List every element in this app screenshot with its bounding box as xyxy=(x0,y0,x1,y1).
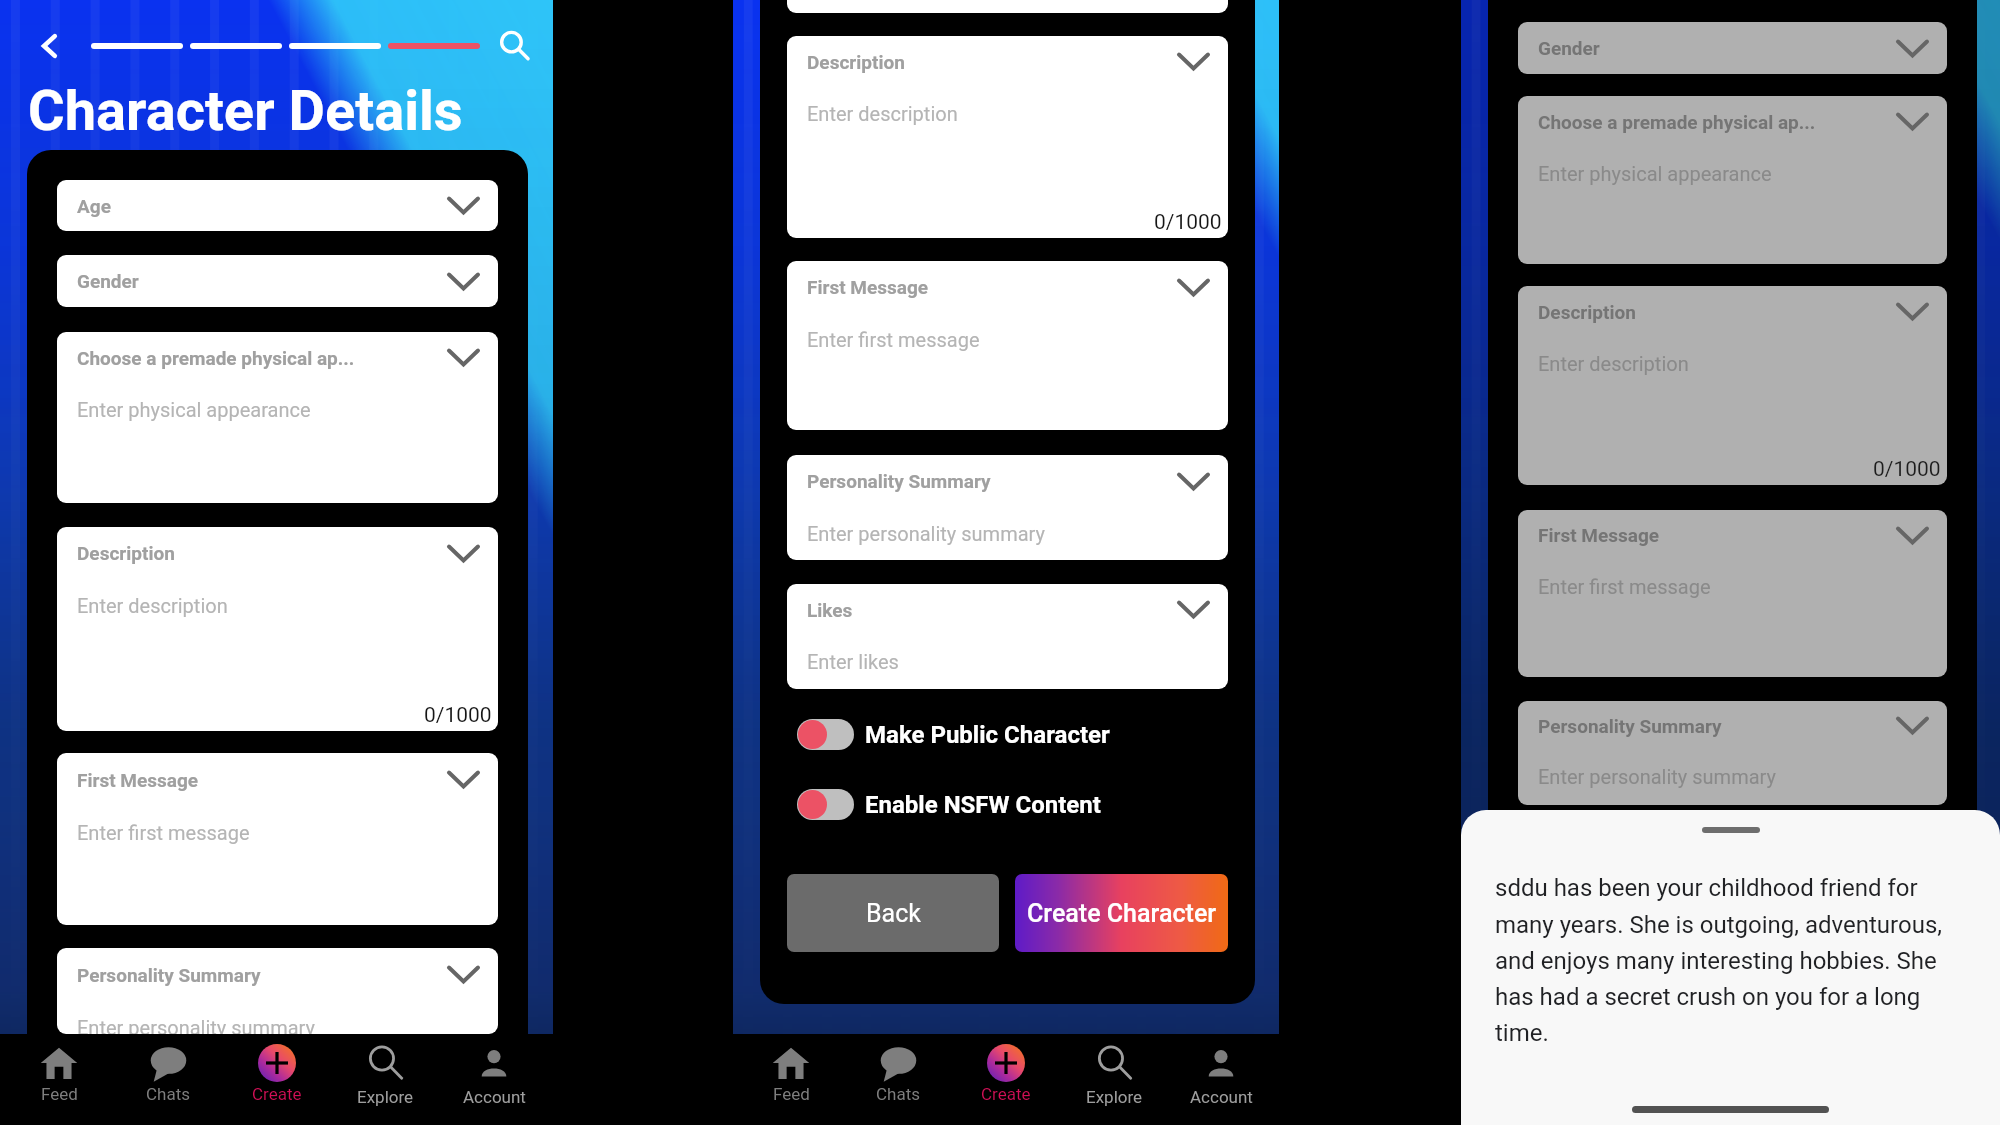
button[interactable]: Enter personality summary xyxy=(57,1001,498,1034)
button[interactable]: Enter description xyxy=(1518,337,1947,485)
staticText: Enter description xyxy=(807,102,958,125)
staticText: First Message xyxy=(807,276,1177,298)
staticText: Enter likes xyxy=(807,650,899,673)
button[interactable]: Enter first message xyxy=(57,806,498,925)
button[interactable]: Feed xyxy=(741,1034,841,1125)
staticText: 0/1000 xyxy=(424,703,492,728)
button[interactable]: Description xyxy=(787,36,1228,87)
staticText: Choose a premade physical ap... xyxy=(1538,111,1896,133)
button[interactable]: Create xyxy=(227,1034,327,1125)
button[interactable]: Back xyxy=(787,874,999,952)
button[interactable]: Choose a premade physical ap... xyxy=(1518,96,1947,147)
button[interactable]: Enter physical appearance xyxy=(1518,147,1947,264)
button[interactable]: Feed xyxy=(9,1034,109,1125)
button[interactable]: Account xyxy=(444,1034,544,1125)
staticText: Enter personality summary xyxy=(807,522,1045,545)
staticText: Character Details xyxy=(28,78,463,144)
button[interactable]: Create Character xyxy=(1015,874,1228,952)
staticText: Create Character xyxy=(1027,899,1217,928)
staticText: Account xyxy=(1190,1087,1253,1107)
staticText: Enter physical appearance xyxy=(77,398,311,421)
staticText: Create xyxy=(981,1084,1031,1104)
staticText: Feed xyxy=(773,1084,810,1104)
button[interactable]: Gender xyxy=(57,255,498,307)
button[interactable]: Enter likes xyxy=(787,635,1228,689)
staticText: Likes xyxy=(807,599,1177,621)
button[interactable]: Age xyxy=(57,180,498,231)
staticText: Enter description xyxy=(77,594,228,617)
button[interactable]: Enter description xyxy=(57,579,498,731)
staticText: Description xyxy=(77,542,447,564)
staticText: First Message xyxy=(77,769,447,791)
button[interactable]: Personality Summary xyxy=(57,948,498,1001)
staticText: Feed xyxy=(41,1084,78,1104)
button[interactable]: Back xyxy=(30,26,70,66)
button[interactable]: Gender xyxy=(1518,22,1947,74)
staticText: Enter personality summary xyxy=(1538,765,1776,788)
staticText: 0/1000 xyxy=(1154,210,1222,235)
staticText: Description xyxy=(807,51,1177,73)
button[interactable]: First Message xyxy=(1518,510,1947,560)
staticText: Enter description xyxy=(1538,352,1689,375)
staticText: sddu has been your childhood friend for … xyxy=(1495,874,1956,1046)
staticText: Back xyxy=(866,899,921,928)
button[interactable]: Create xyxy=(956,1034,1056,1125)
staticText: Description xyxy=(1538,301,1896,323)
staticText: First Message xyxy=(1538,524,1896,546)
button[interactable]: Explore xyxy=(1064,1034,1164,1125)
button[interactable]: Enter personality summary xyxy=(787,507,1228,560)
button[interactable]: Description xyxy=(1518,286,1947,337)
staticText: Gender xyxy=(1538,37,1896,59)
button[interactable]: First Message xyxy=(57,753,498,806)
button[interactable]: Account xyxy=(1171,1034,1271,1125)
staticText: Enter first message xyxy=(807,328,980,351)
button[interactable]: Chats xyxy=(118,1034,218,1125)
button[interactable]: Make Public Character xyxy=(787,719,1228,750)
button[interactable]: Personality Summary xyxy=(787,455,1228,507)
staticText: Account xyxy=(463,1087,526,1107)
staticText: Chats xyxy=(146,1084,191,1104)
staticText: Make Public Character xyxy=(865,721,1110,749)
button[interactable]: Description xyxy=(57,527,498,579)
staticText: Enable NSFW Content xyxy=(865,791,1101,819)
staticText: Create xyxy=(252,1084,302,1104)
staticText: Personality Summary xyxy=(807,470,1177,492)
button[interactable]: Explore xyxy=(335,1034,435,1125)
button[interactable]: Enter description xyxy=(787,87,1228,238)
staticText: Enter first message xyxy=(77,821,250,844)
staticText: Chats xyxy=(876,1084,921,1104)
button[interactable]: First Message xyxy=(787,261,1228,313)
staticText: Age xyxy=(77,195,447,217)
button[interactable]: Choose a premade physical ap... xyxy=(57,332,498,383)
button[interactable]: Chats xyxy=(848,1034,948,1125)
button[interactable]: Likes xyxy=(787,584,1228,635)
staticText: Enter first message xyxy=(1538,575,1711,598)
staticText: Choose a premade physical ap... xyxy=(77,347,447,369)
staticText: Enter personality summary xyxy=(77,1016,315,1034)
button[interactable]: Enter physical appearance xyxy=(57,383,498,503)
staticText: Gender xyxy=(77,270,447,292)
button[interactable]: Search xyxy=(495,27,533,65)
staticText: Personality Summary xyxy=(1538,715,1896,737)
button[interactable]: Enter first message xyxy=(787,313,1228,430)
staticText: Explore xyxy=(1086,1087,1143,1107)
staticText: Personality Summary xyxy=(77,964,447,986)
staticText: Explore xyxy=(357,1087,414,1107)
button[interactable]: Personality Summary xyxy=(1518,701,1947,750)
button[interactable]: Enter personality summary xyxy=(1518,750,1947,805)
button[interactable]: Enter first message xyxy=(1518,560,1947,677)
staticText: Enter physical appearance xyxy=(1538,162,1772,185)
button[interactable]: Enable NSFW Content xyxy=(787,789,1228,820)
staticText: 0/1000 xyxy=(1873,457,1941,482)
